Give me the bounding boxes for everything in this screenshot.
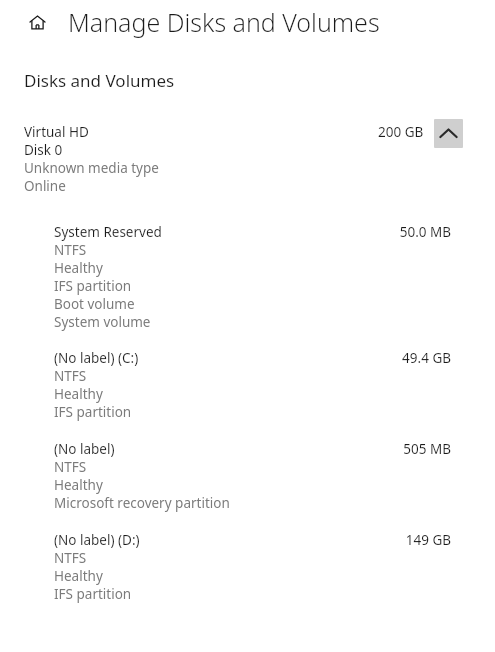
- staticText: Boot volume: [54, 295, 135, 313]
- staticText: 49.4 GB: [402, 349, 451, 367]
- staticText: Online: [24, 177, 66, 195]
- staticText: (No label) (C:): [54, 349, 139, 367]
- button[interactable]: (No label) (D:): [0, 531, 495, 603]
- staticText: Disks and Volumes: [24, 69, 175, 92]
- staticText: IFS partition: [54, 585, 132, 603]
- staticText: NTFS: [54, 241, 87, 259]
- staticText: Microsoft recovery partition: [54, 494, 230, 512]
- staticText: NTFS: [54, 458, 87, 476]
- button[interactable]: Home: [22, 7, 52, 37]
- staticText: Healthy: [54, 567, 103, 585]
- staticText: 50.0 MB: [399, 223, 451, 241]
- staticText: System volume: [54, 313, 151, 331]
- staticText: 200 GB: [378, 123, 424, 141]
- button[interactable]: (No label) (C:): [0, 349, 495, 421]
- staticText: 149 GB: [405, 531, 451, 549]
- staticText: Manage Disks and Volumes: [68, 5, 380, 39]
- button[interactable]: Collapse: [434, 119, 463, 148]
- staticText: 505 MB: [403, 440, 451, 458]
- staticText: Disk 0: [24, 141, 63, 159]
- staticText: Healthy: [54, 259, 103, 277]
- staticText: System Reserved: [54, 223, 162, 241]
- staticText: IFS partition: [54, 403, 132, 421]
- staticText: NTFS: [54, 367, 87, 385]
- button[interactable]: (No label): [0, 440, 495, 512]
- button[interactable]: Virtual HD: [0, 123, 495, 195]
- staticText: Virtual HD: [24, 123, 89, 141]
- staticText: (No label) (D:): [54, 531, 140, 549]
- staticText: Healthy: [54, 385, 103, 403]
- staticText: (No label): [54, 440, 115, 458]
- button[interactable]: System Reserved: [0, 223, 495, 331]
- staticText: Unknown media type: [24, 159, 159, 177]
- staticText: Healthy: [54, 476, 103, 494]
- staticText: IFS partition: [54, 277, 132, 295]
- staticText: NTFS: [54, 549, 87, 567]
